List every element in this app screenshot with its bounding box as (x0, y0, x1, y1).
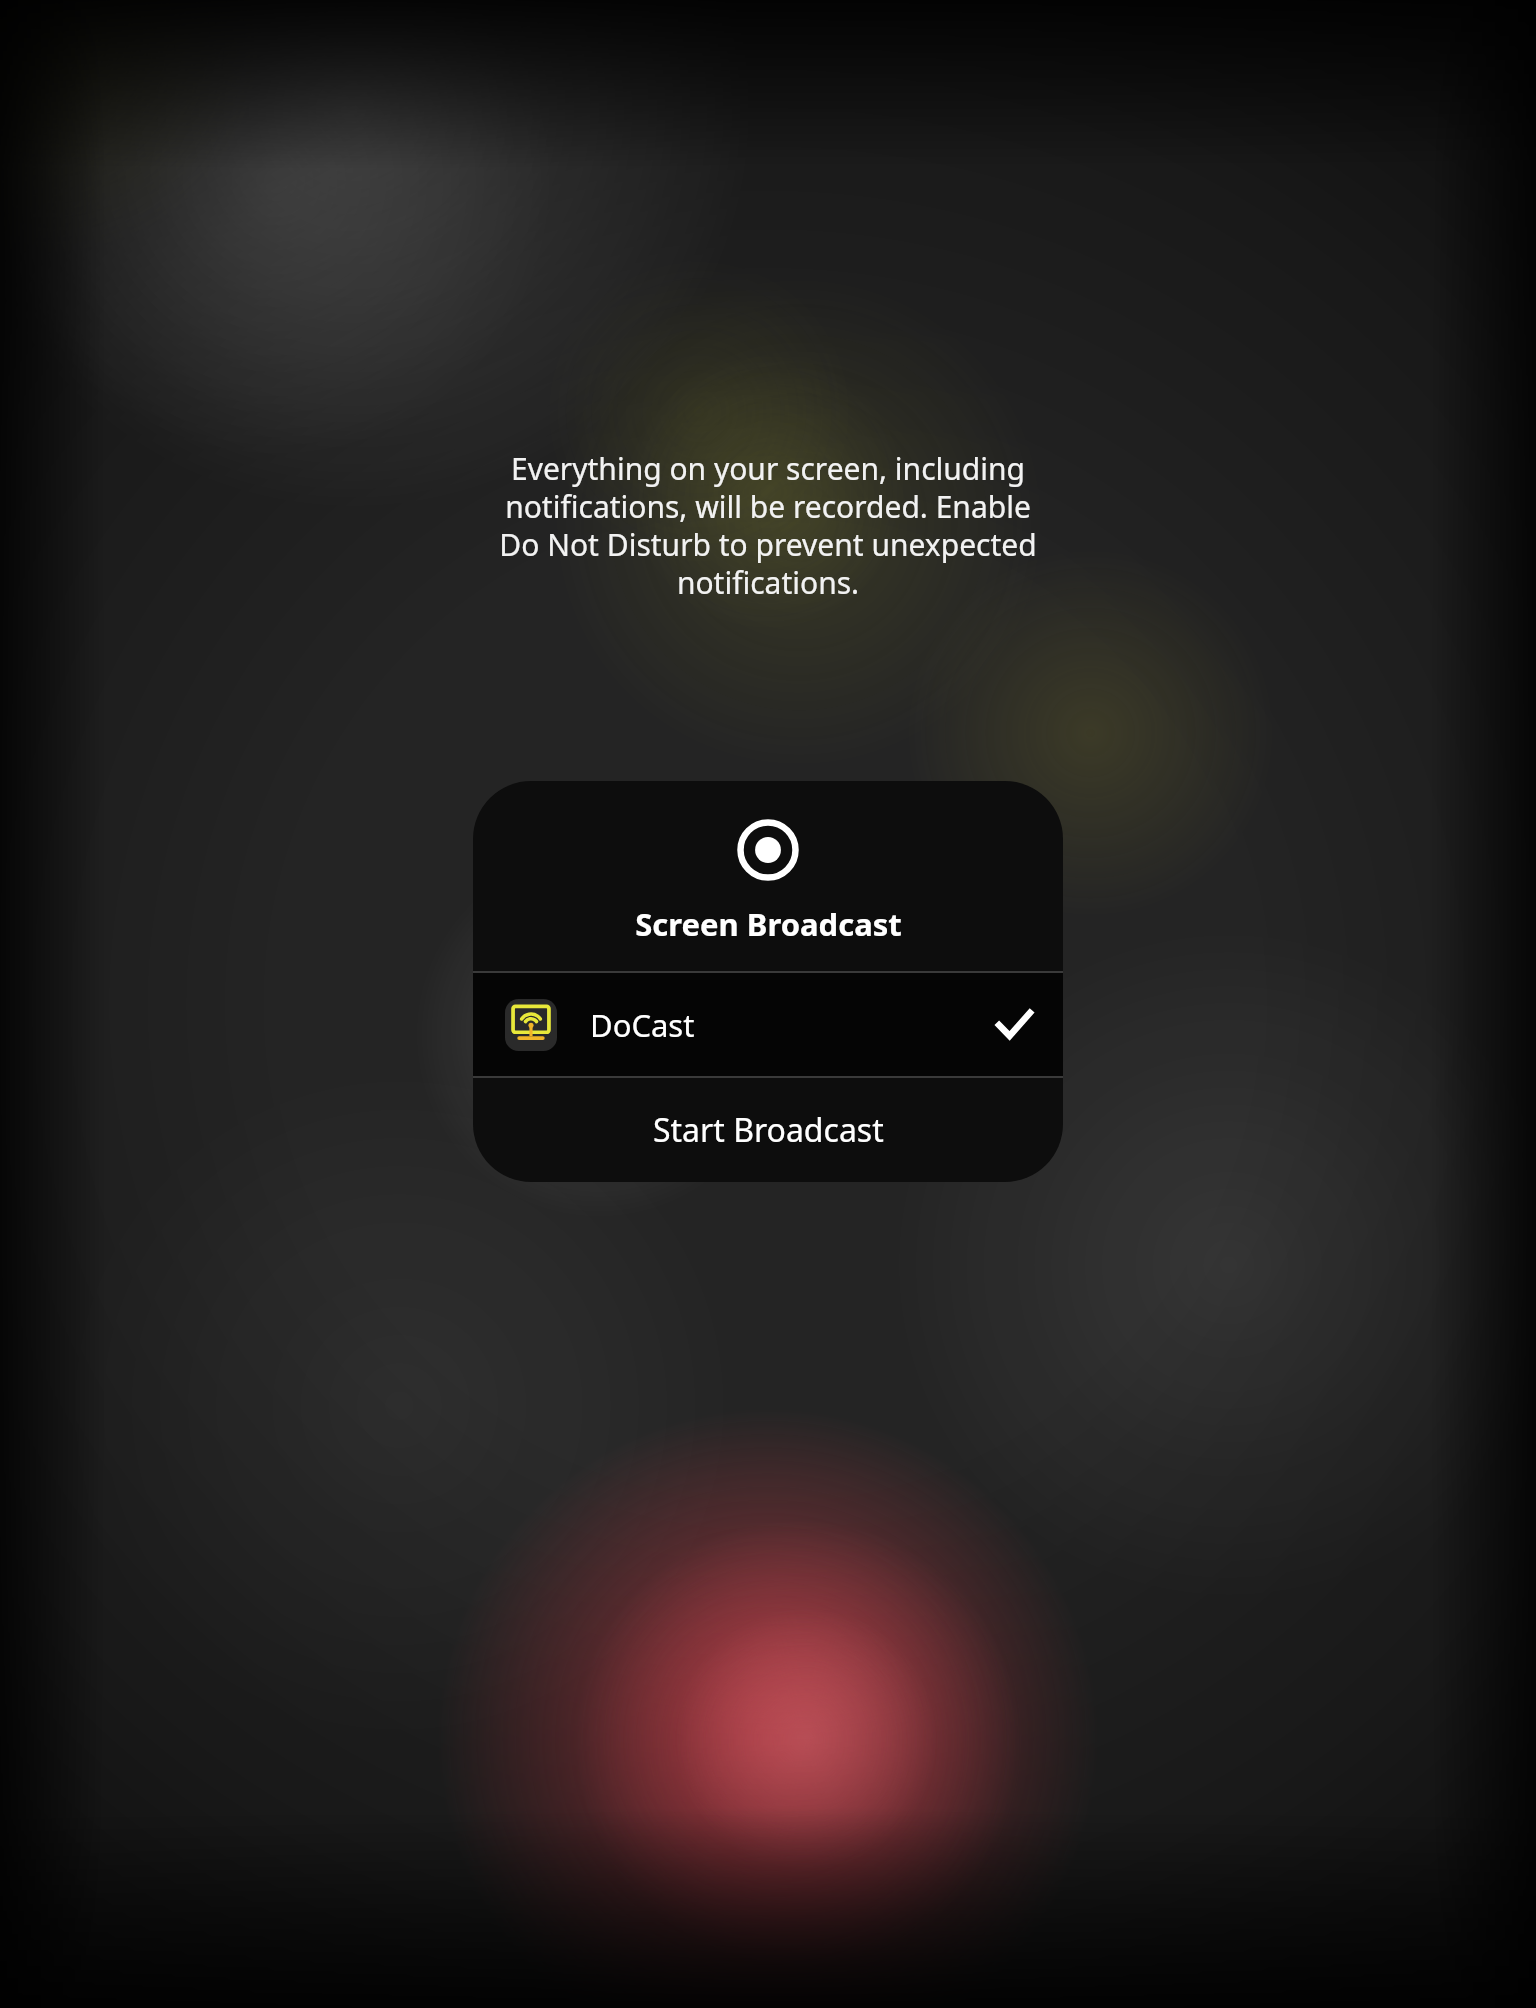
staticText: Everything on your screen, including not… (498, 448, 1038, 603)
staticText: Screen Broadcast (635, 903, 902, 945)
staticText: DoCast (590, 1004, 695, 1046)
staticText: Start Broadcast (653, 1108, 884, 1152)
other: Selected (997, 1008, 1031, 1042)
button[interactable]: Start Broadcast (473, 1078, 1063, 1182)
button[interactable]: DoCast (473, 973, 1063, 1076)
